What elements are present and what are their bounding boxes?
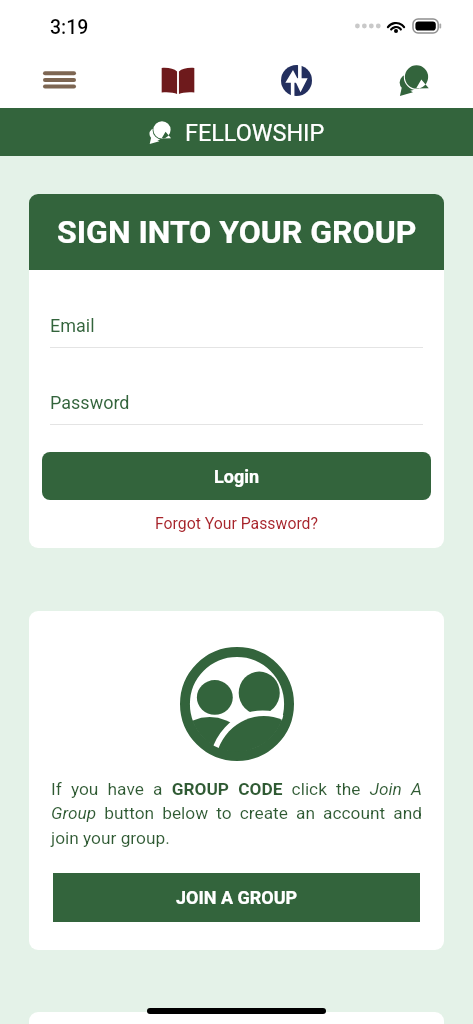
button[interactable]: Fellowship chat bbox=[355, 52, 473, 108]
button[interactable]: Bible bbox=[119, 52, 237, 108]
staticText: 3:19 bbox=[50, 16, 89, 39]
staticText: If you have a GROUP CODE click the Join … bbox=[51, 779, 422, 849]
staticText: Password bbox=[50, 392, 130, 413]
staticText: Email bbox=[50, 315, 95, 336]
staticText: Login bbox=[214, 466, 260, 487]
staticText: FELLOWSHIP bbox=[185, 119, 325, 146]
staticText: SIGN INTO YOUR GROUP bbox=[57, 213, 417, 251]
button[interactable]: Login bbox=[42, 452, 431, 500]
button[interactable]: Forgot Your Password? bbox=[29, 514, 444, 533]
staticText: Forgot Your Password? bbox=[155, 514, 318, 533]
staticText: JOIN A GROUP bbox=[176, 887, 298, 908]
button[interactable]: Menu bbox=[0, 52, 119, 108]
button[interactable]: Transfer bbox=[237, 52, 355, 108]
button[interactable]: JOIN A GROUP bbox=[53, 873, 420, 922]
